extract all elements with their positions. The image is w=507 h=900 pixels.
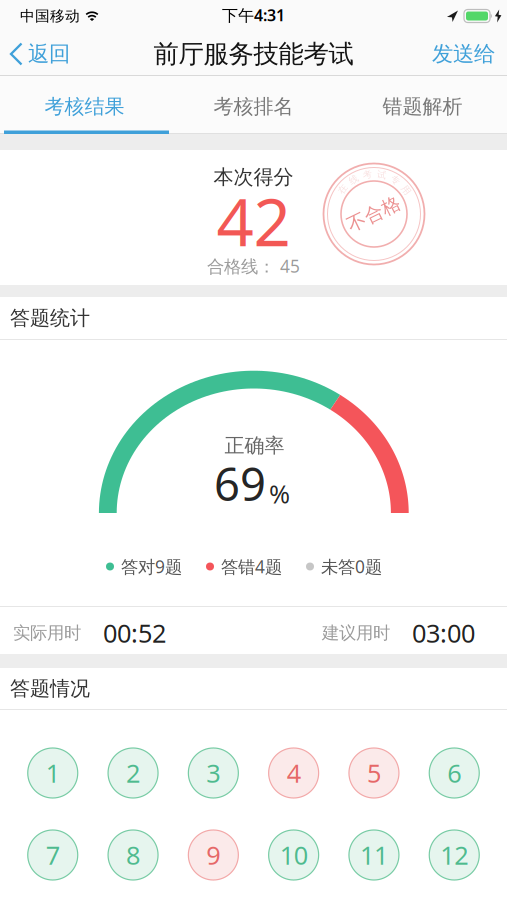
staticText: 12 [440,838,468,872]
staticText: 发送给 [432,41,495,67]
button[interactable]: 错题解析 [338,79,507,133]
staticText: 4 [287,756,301,790]
button[interactable]: 10 [269,830,319,880]
button[interactable]: 考核结果 [0,79,169,133]
staticText: 在 [338,184,347,195]
button[interactable]: 9 [188,830,238,880]
staticText: 11 [360,838,388,872]
staticText: 合格线： 45 [207,254,300,277]
staticText: 下午4:31 [222,4,285,26]
staticText: 错题解析 [382,94,462,119]
button[interactable]: 1 [28,748,78,798]
staticText: 前厅服务技能考试 [153,38,353,69]
button[interactable]: 返回 [0,34,70,74]
staticText: 答对9题 [121,555,182,578]
staticText: 考核结果 [44,94,124,119]
staticText: 6 [447,756,461,790]
staticText: 69 [214,453,266,514]
button[interactable]: 发送给 [432,34,507,74]
button[interactable]: 考核排名 [169,79,338,133]
staticText: 实际用时 [13,622,81,644]
button[interactable]: 12 [429,830,479,880]
button[interactable]: 2 [108,748,158,798]
button[interactable]: 8 [108,830,158,880]
staticText: 9 [206,838,220,872]
staticText: 未答0题 [321,555,382,578]
button[interactable]: 6 [429,748,479,798]
staticText: % [269,477,290,511]
staticText: 42 [216,178,290,264]
staticText: 不合格 [345,202,402,225]
staticText: 专 [391,174,400,186]
staticText: 考核排名 [213,94,293,119]
staticText: 试 [377,169,386,180]
staticText: 8 [126,838,140,872]
staticText: 中国移动 [20,7,80,25]
button[interactable]: 5 [349,748,399,798]
button[interactable]: 7 [28,830,78,880]
staticText: 返回 [28,41,70,67]
staticText: 7 [46,838,60,872]
staticText: 考 [363,169,372,180]
staticText: 答题情况 [10,676,90,701]
staticText: 5 [367,756,381,790]
staticText: 00:52 [103,616,166,650]
button[interactable]: 3 [188,748,238,798]
staticText: 10 [280,838,308,872]
button[interactable]: 4 [269,748,319,798]
staticText: 2 [126,756,140,790]
staticText: 建议用时 [322,622,390,644]
staticText: 答题统计 [10,306,90,330]
staticText: 正确率 [224,433,284,458]
staticText: 线 [349,174,358,185]
staticText: 用 [401,184,410,196]
staticText: 答错4题 [221,555,282,578]
staticText: 本次得分 [213,165,293,189]
staticText: 03:00 [412,616,475,650]
button[interactable]: 11 [349,830,399,880]
staticText: 3 [206,756,220,790]
staticText: 1 [46,756,60,790]
